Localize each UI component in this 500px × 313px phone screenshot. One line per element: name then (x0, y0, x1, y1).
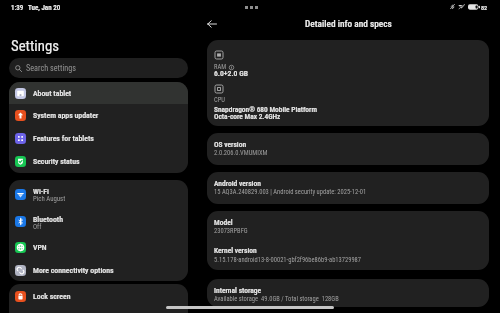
staticText: Internal storage (214, 286, 262, 295)
staticText: 2.0.206.0.VMUMIXM (214, 149, 489, 157)
staticText: Search settings (26, 63, 77, 73)
button[interactable]: Security status (9, 150, 188, 173)
staticText: RAM (214, 63, 227, 71)
button[interactable]: Features for tablets (9, 127, 188, 150)
staticText: VPN (33, 243, 47, 252)
staticText: Features for tablets (33, 134, 94, 143)
staticText: 82 (481, 4, 488, 11)
staticText: 23073RPBFG (214, 227, 489, 235)
staticText: OS version (214, 140, 247, 149)
button[interactable]: About tablet (9, 82, 188, 104)
staticText: Pich August (33, 195, 66, 203)
staticText: Detailed info and specs (305, 18, 392, 29)
staticText: 6.0+2.0 GB (214, 69, 249, 78)
staticText: Wi-Fi (33, 187, 49, 196)
button[interactable]: Bluetooth (9, 208, 188, 235)
staticText: 1:39 (11, 4, 24, 12)
staticText: Available storage 49.0GB / Total storage… (214, 295, 489, 303)
button[interactable]: Android version (207, 172, 489, 204)
button[interactable]: RAM (207, 40, 489, 126)
staticText: About tablet (33, 89, 72, 98)
staticText: Off (33, 223, 42, 231)
button[interactable]: Back (203, 15, 220, 32)
staticText: Bluetooth (33, 215, 63, 224)
staticText: Octa-core Max 2.4GHz (214, 112, 281, 121)
staticText: Model (214, 218, 233, 227)
button[interactable]: System apps updater (9, 104, 188, 127)
button[interactable]: Lock screen (9, 284, 188, 308)
staticText: 15 AQ3A.240829.003 | Android security up… (214, 188, 489, 196)
button[interactable]: OS version (207, 133, 489, 165)
staticText: 5.15.178-android13-8-00021-gbf2f96be86b9… (214, 256, 489, 264)
staticText: Kernel version (214, 246, 257, 255)
staticText: CPU (214, 96, 225, 104)
button[interactable]: Search settings (9, 58, 188, 78)
staticText: System apps updater (33, 111, 99, 120)
staticText: Lock screen (33, 292, 71, 301)
button[interactable]: Wi-Fi (9, 180, 188, 208)
staticText: Tue, Jan 20 (28, 4, 61, 12)
button[interactable]: Internal storage (207, 279, 489, 307)
staticText: Security status (33, 157, 80, 166)
button[interactable]: VPN (9, 235, 188, 259)
button[interactable]: Model (207, 211, 489, 270)
button[interactable]: More connectivity options (9, 259, 188, 281)
staticText: Android version (214, 179, 261, 188)
staticText: More connectivity options (33, 266, 114, 275)
staticText: Settings (11, 37, 59, 54)
staticText: Snapdragon® 680 Mobile Platform (214, 105, 317, 114)
